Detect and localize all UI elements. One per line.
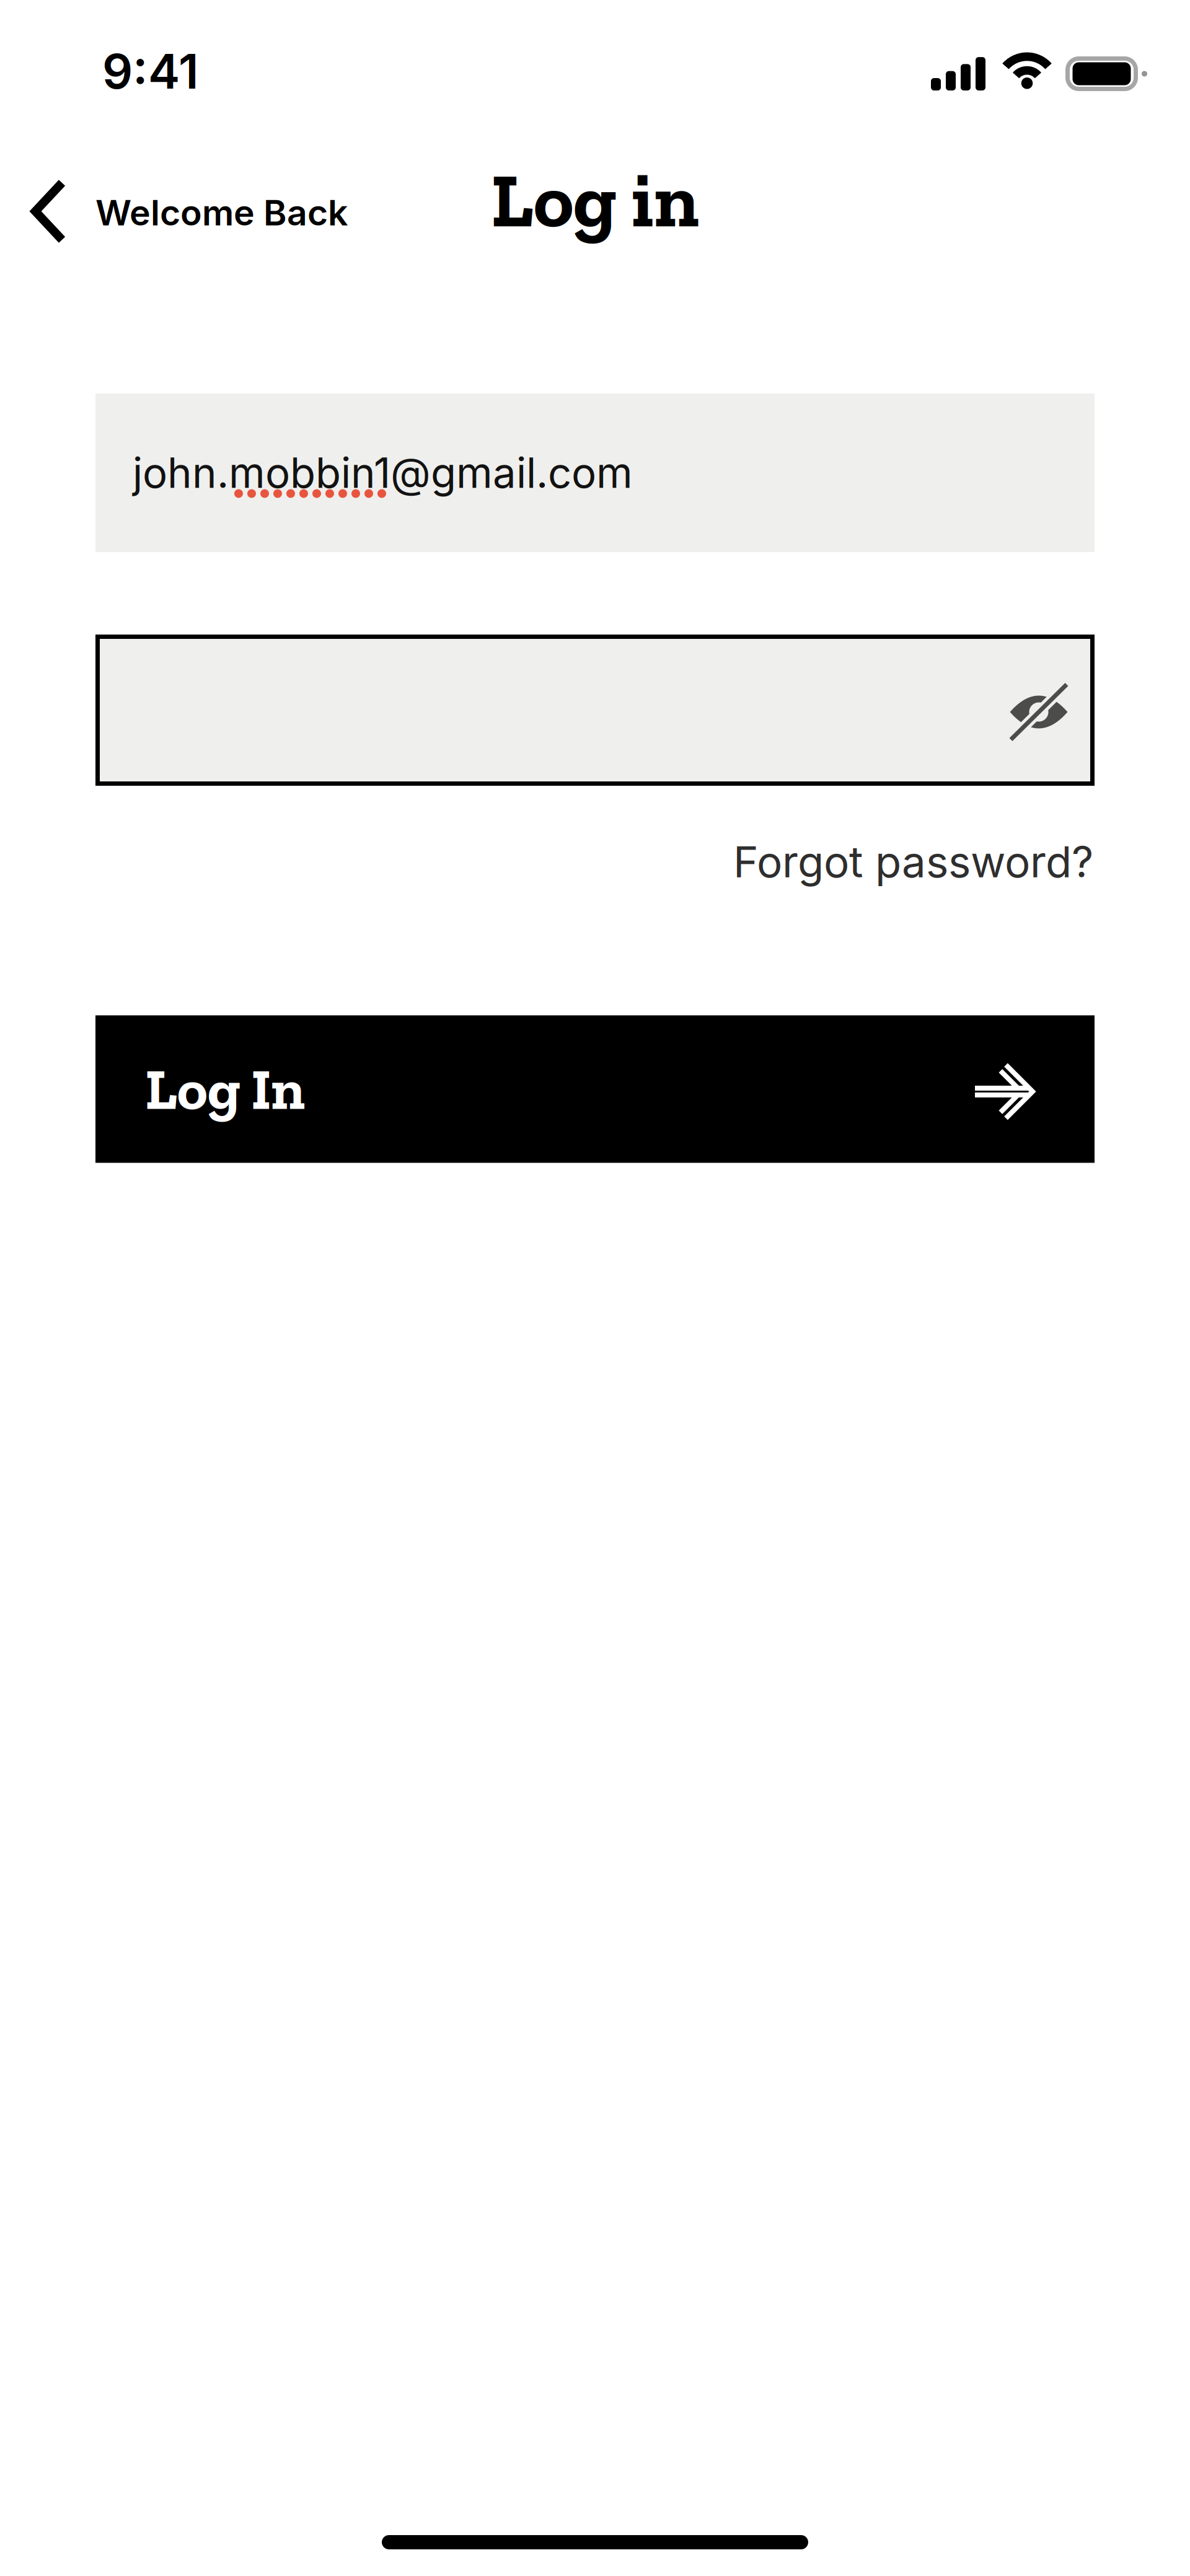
button[interactable]: Show password [991,635,1095,786]
staticText: Forgot password? [733,836,1093,888]
button[interactable]: Welcome Back [0,143,369,280]
staticText: 9:41 [102,42,199,100]
staticText: Log In [145,1055,305,1124]
staticText: Log in [491,154,699,246]
staticText: john.mobbin1@gmail.com [133,448,633,498]
staticText: Welcome Back [95,191,348,234]
button[interactable]: Forgot password? [731,824,1096,900]
button[interactable]: Log In [95,1015,1095,1163]
